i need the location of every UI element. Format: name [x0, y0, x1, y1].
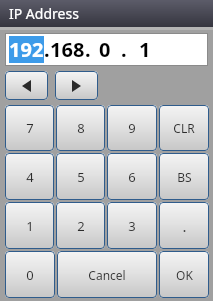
staticText: 9 — [128, 119, 136, 137]
staticText: 192 — [9, 36, 44, 63]
button[interactable]: 4 — [5, 153, 54, 200]
button[interactable]: Move right — [55, 71, 98, 100]
staticText: 168 — [50, 36, 85, 63]
staticText: Cancel — [88, 267, 126, 283]
button[interactable]: 9 — [107, 105, 157, 151]
staticText: 0 — [99, 36, 111, 63]
staticText: CLR — [173, 120, 195, 136]
staticText: OK — [176, 267, 193, 283]
staticText: 3 — [128, 217, 136, 235]
staticText: . — [121, 36, 127, 63]
staticText: 1 — [139, 36, 151, 63]
button[interactable]: Cancel — [57, 251, 157, 298]
staticText: BS — [177, 169, 192, 185]
button[interactable]: Move left — [5, 71, 48, 100]
button[interactable]: OK — [159, 251, 209, 298]
staticText: 2 — [77, 217, 85, 235]
button[interactable]: 0 — [5, 251, 55, 298]
button[interactable]: CLR — [159, 105, 209, 151]
button[interactable]: 2 — [56, 202, 105, 249]
staticText: IP Address — [9, 4, 79, 23]
staticText: 1 — [26, 217, 34, 235]
staticText: 4 — [26, 168, 34, 186]
button[interactable]: 3 — [107, 202, 157, 249]
button[interactable]: 6 — [107, 153, 157, 200]
button[interactable]: 7 — [5, 105, 54, 151]
staticText: 5 — [77, 168, 85, 186]
staticText: 8 — [77, 119, 85, 137]
button[interactable]: . — [159, 202, 209, 249]
button[interactable]: 8 — [56, 105, 105, 151]
staticText: . — [85, 36, 91, 63]
button[interactable]: 5 — [56, 153, 105, 200]
staticText: . — [44, 36, 50, 63]
staticText: . — [182, 216, 187, 236]
button[interactable]: BS — [159, 153, 209, 200]
staticText: 0 — [26, 266, 34, 284]
staticText: 6 — [128, 168, 136, 186]
button[interactable]: 1 — [5, 202, 54, 249]
staticText: 7 — [26, 119, 34, 137]
